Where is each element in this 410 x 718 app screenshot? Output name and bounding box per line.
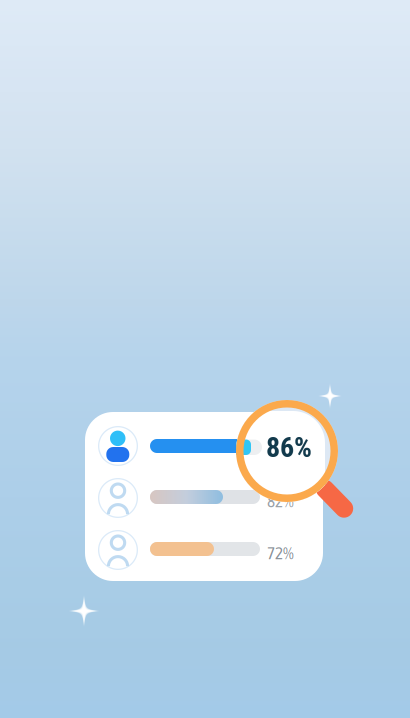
staticText: 82%: [267, 491, 294, 511]
button[interactable]: Magnifier: [232, 390, 362, 530]
staticText: 72%: [267, 543, 294, 563]
staticText: 86%: [266, 431, 312, 464]
